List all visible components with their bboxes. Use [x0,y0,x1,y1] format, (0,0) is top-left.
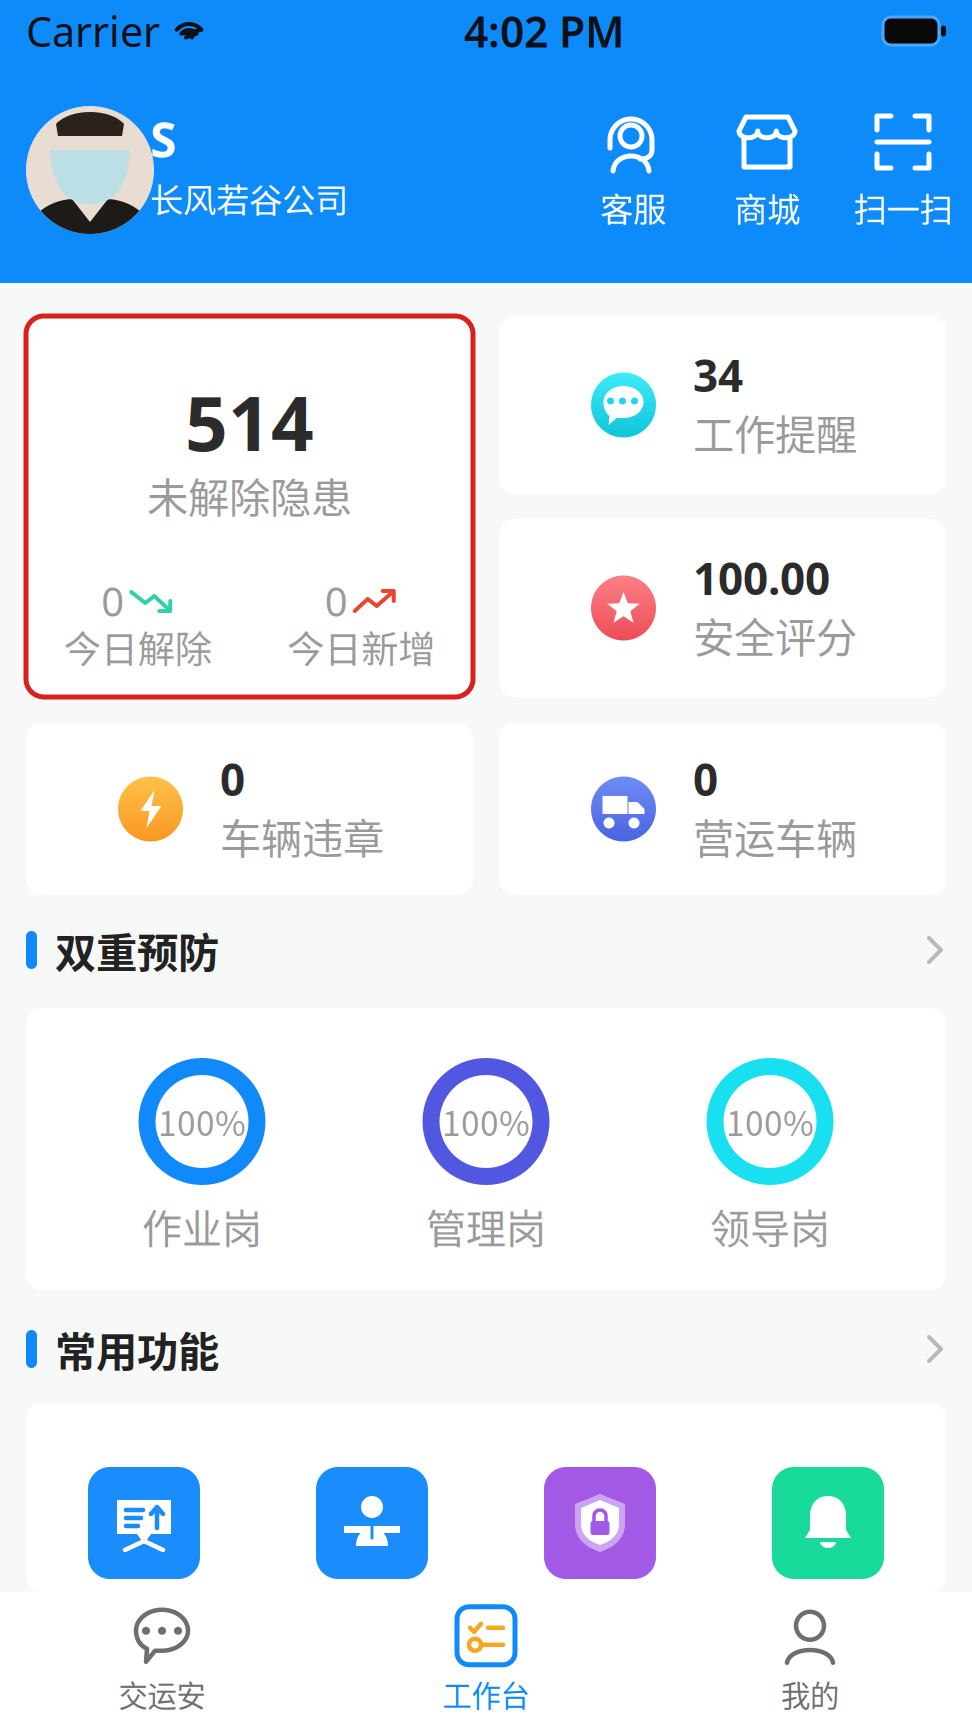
button[interactable]: 商城 [700,103,834,237]
staticText: 扫一扫 [853,183,952,231]
staticText: 0 [220,750,245,808]
button[interactable]: 扫一扫 [834,103,972,237]
staticText: 未解除隐患 [147,465,352,525]
staticText: 管理岗 [426,1197,546,1255]
staticText: 交运安 [118,1673,205,1715]
button[interactable]: Function [772,1467,884,1579]
button[interactable]: 客服 [566,103,700,237]
button[interactable]: 交运安 [0,1592,324,1728]
staticText: 今日解除 [64,620,212,674]
staticText: 长风若谷公司 [150,174,348,222]
staticText: 514 [185,372,314,472]
staticText: 今日新增 [287,620,435,674]
staticText: 工作提醒 [693,402,857,462]
button[interactable]: 100.00 [499,519,946,697]
staticText: 商城 [734,183,800,231]
button[interactable]: 514 [26,316,473,697]
staticText: 我的 [781,1673,839,1715]
button[interactable]: Function [88,1467,200,1579]
staticText: 0 [325,574,348,627]
staticText: Carrier [26,4,160,58]
button[interactable]: 0 [499,723,946,895]
staticText: 100% [158,1097,246,1146]
staticText: 34 [693,346,743,404]
staticText: 0 [693,750,718,808]
staticText: 100% [442,1097,530,1146]
staticText: 100.00 [693,549,830,607]
button[interactable]: 0 [26,723,473,895]
staticText: 工作台 [442,1673,529,1715]
staticText: 双重预防 [55,920,219,980]
staticText: 0 [101,574,124,627]
button[interactable]: 34 [499,316,946,494]
button[interactable]: 常用功能 [0,1318,972,1380]
staticText: 作业岗 [142,1197,262,1255]
staticText: 车辆违章 [220,806,384,866]
button[interactable]: 我的 [648,1592,972,1728]
staticText: 100% [726,1097,814,1146]
button[interactable]: 工作台 [324,1592,648,1728]
button[interactable]: Function [316,1467,428,1579]
staticText: 4:02 PM [464,3,625,59]
staticText: 领导岗 [710,1197,830,1255]
staticText: S [150,107,176,171]
staticText: 安全评分 [693,605,857,665]
staticText: 营运车辆 [693,806,857,866]
staticText: 客服 [600,183,666,231]
button[interactable]: 双重预防 [0,919,972,981]
staticText: 常用功能 [55,1319,219,1379]
button[interactable]: Function [544,1467,656,1579]
